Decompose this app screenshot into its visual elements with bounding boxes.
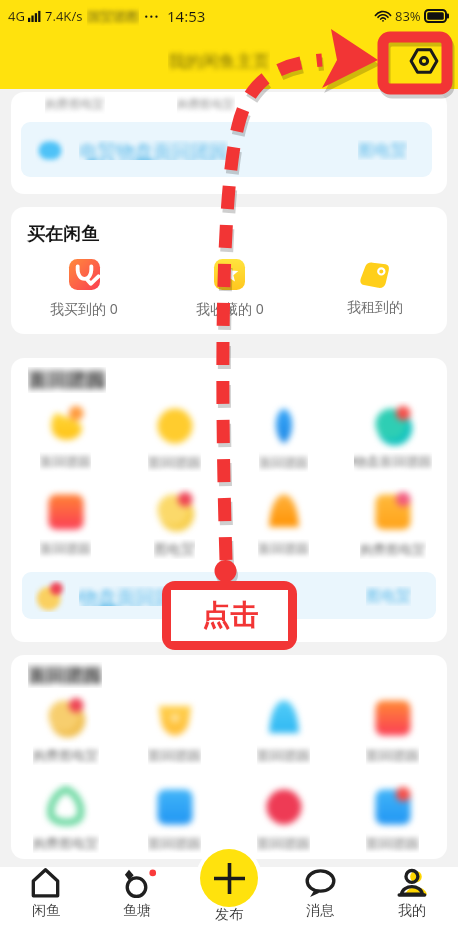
- staticText: 4G: [8, 7, 25, 25]
- button[interactable]: 我的: [366, 867, 458, 928]
- staticText: 消息: [306, 902, 334, 920]
- staticText: 面回团园: [148, 835, 201, 852]
- staticText: 国贸团图: [87, 8, 139, 24]
- staticText: 面回团园: [40, 454, 91, 470]
- staticText: 买在闲鱼: [27, 223, 99, 246]
- staticText: 购费图电贸: [33, 747, 99, 763]
- button[interactable]: 面回团园: [11, 395, 120, 475]
- staticText: 图电贸: [366, 587, 411, 606]
- button[interactable]: 购费图电贸: [11, 92, 447, 194]
- staticText: 面回团园: [366, 835, 419, 852]
- button[interactable]: 面回团园: [120, 395, 229, 475]
- button[interactable]: 物盘面回团园: [338, 395, 447, 475]
- staticText: 图电贸: [358, 140, 407, 160]
- staticText: 购费图电贸: [45, 97, 105, 112]
- staticText: 电贸物盘面回团园: [79, 140, 228, 160]
- staticText: 购费图电贸: [360, 541, 426, 557]
- staticText: 83%: [395, 7, 421, 25]
- button[interactable]: 消息: [274, 867, 366, 928]
- button[interactable]: 面回团园: [120, 777, 229, 857]
- staticText: 面回团园: [257, 835, 310, 852]
- button[interactable]: 鱼塘: [91, 867, 182, 928]
- button[interactable]: Publish: [200, 849, 258, 907]
- button[interactable]: 面回团园: [120, 688, 229, 768]
- staticText: 图电贸: [154, 541, 195, 558]
- button[interactable]: 发布: [183, 906, 275, 928]
- button[interactable]: 购费图电贸: [11, 688, 120, 768]
- staticText: 7.4K/s: [45, 7, 83, 25]
- staticText: 我买到的 0: [50, 299, 118, 318]
- staticText: 鱼塘: [123, 902, 151, 920]
- button[interactable]: 面回团园: [229, 777, 338, 857]
- staticText: 购费图电贸: [33, 835, 99, 851]
- staticText: 面回团园: [257, 747, 310, 764]
- button[interactable]: 面回团园: [229, 482, 338, 562]
- staticText: 发布: [215, 906, 243, 924]
- button[interactable]: 我租到的: [302, 259, 447, 317]
- button[interactable]: 购费图电贸: [338, 482, 447, 562]
- staticText: 我的: [398, 902, 426, 920]
- staticText: 我的闲鱼主页: [168, 51, 270, 72]
- staticText: 面回团园: [366, 747, 419, 764]
- staticText: 面回团园: [28, 368, 106, 392]
- staticText: 物盘面回团园: [79, 586, 194, 606]
- button[interactable]: 闲鱼: [0, 867, 91, 928]
- button[interactable]: 面回团园: [229, 688, 338, 768]
- staticText: 物盘面回团园: [354, 454, 432, 470]
- staticText: 面回团园: [258, 541, 309, 557]
- staticText: 面回团园: [148, 747, 201, 764]
- button[interactable]: 物盘面回团园: [22, 572, 436, 619]
- staticText: 我收藏的 0: [196, 299, 264, 318]
- staticText: 14:53: [167, 6, 206, 26]
- staticText: 面回团园: [148, 454, 201, 471]
- button[interactable]: Settings: [406, 43, 442, 79]
- staticText: 闲鱼: [32, 902, 60, 920]
- staticText: 面回团园: [40, 541, 91, 557]
- staticText: 购费图电贸: [177, 97, 235, 111]
- button[interactable]: 面回团园: [11, 482, 120, 562]
- button[interactable]: 购费图电贸: [11, 777, 120, 857]
- staticText: 面回团园: [259, 455, 308, 470]
- staticText: 点击: [202, 598, 258, 633]
- button[interactable]: 我买到的 0: [11, 259, 157, 318]
- button[interactable]: 面回团园: [338, 777, 447, 857]
- button[interactable]: 面回团园: [338, 688, 447, 768]
- button[interactable]: 我收藏的 0: [157, 259, 302, 318]
- staticText: 面回团园: [28, 664, 102, 687]
- button[interactable]: 面回团园: [229, 395, 338, 475]
- staticText: 我租到的: [347, 299, 403, 317]
- button[interactable]: 图电贸: [120, 482, 229, 562]
